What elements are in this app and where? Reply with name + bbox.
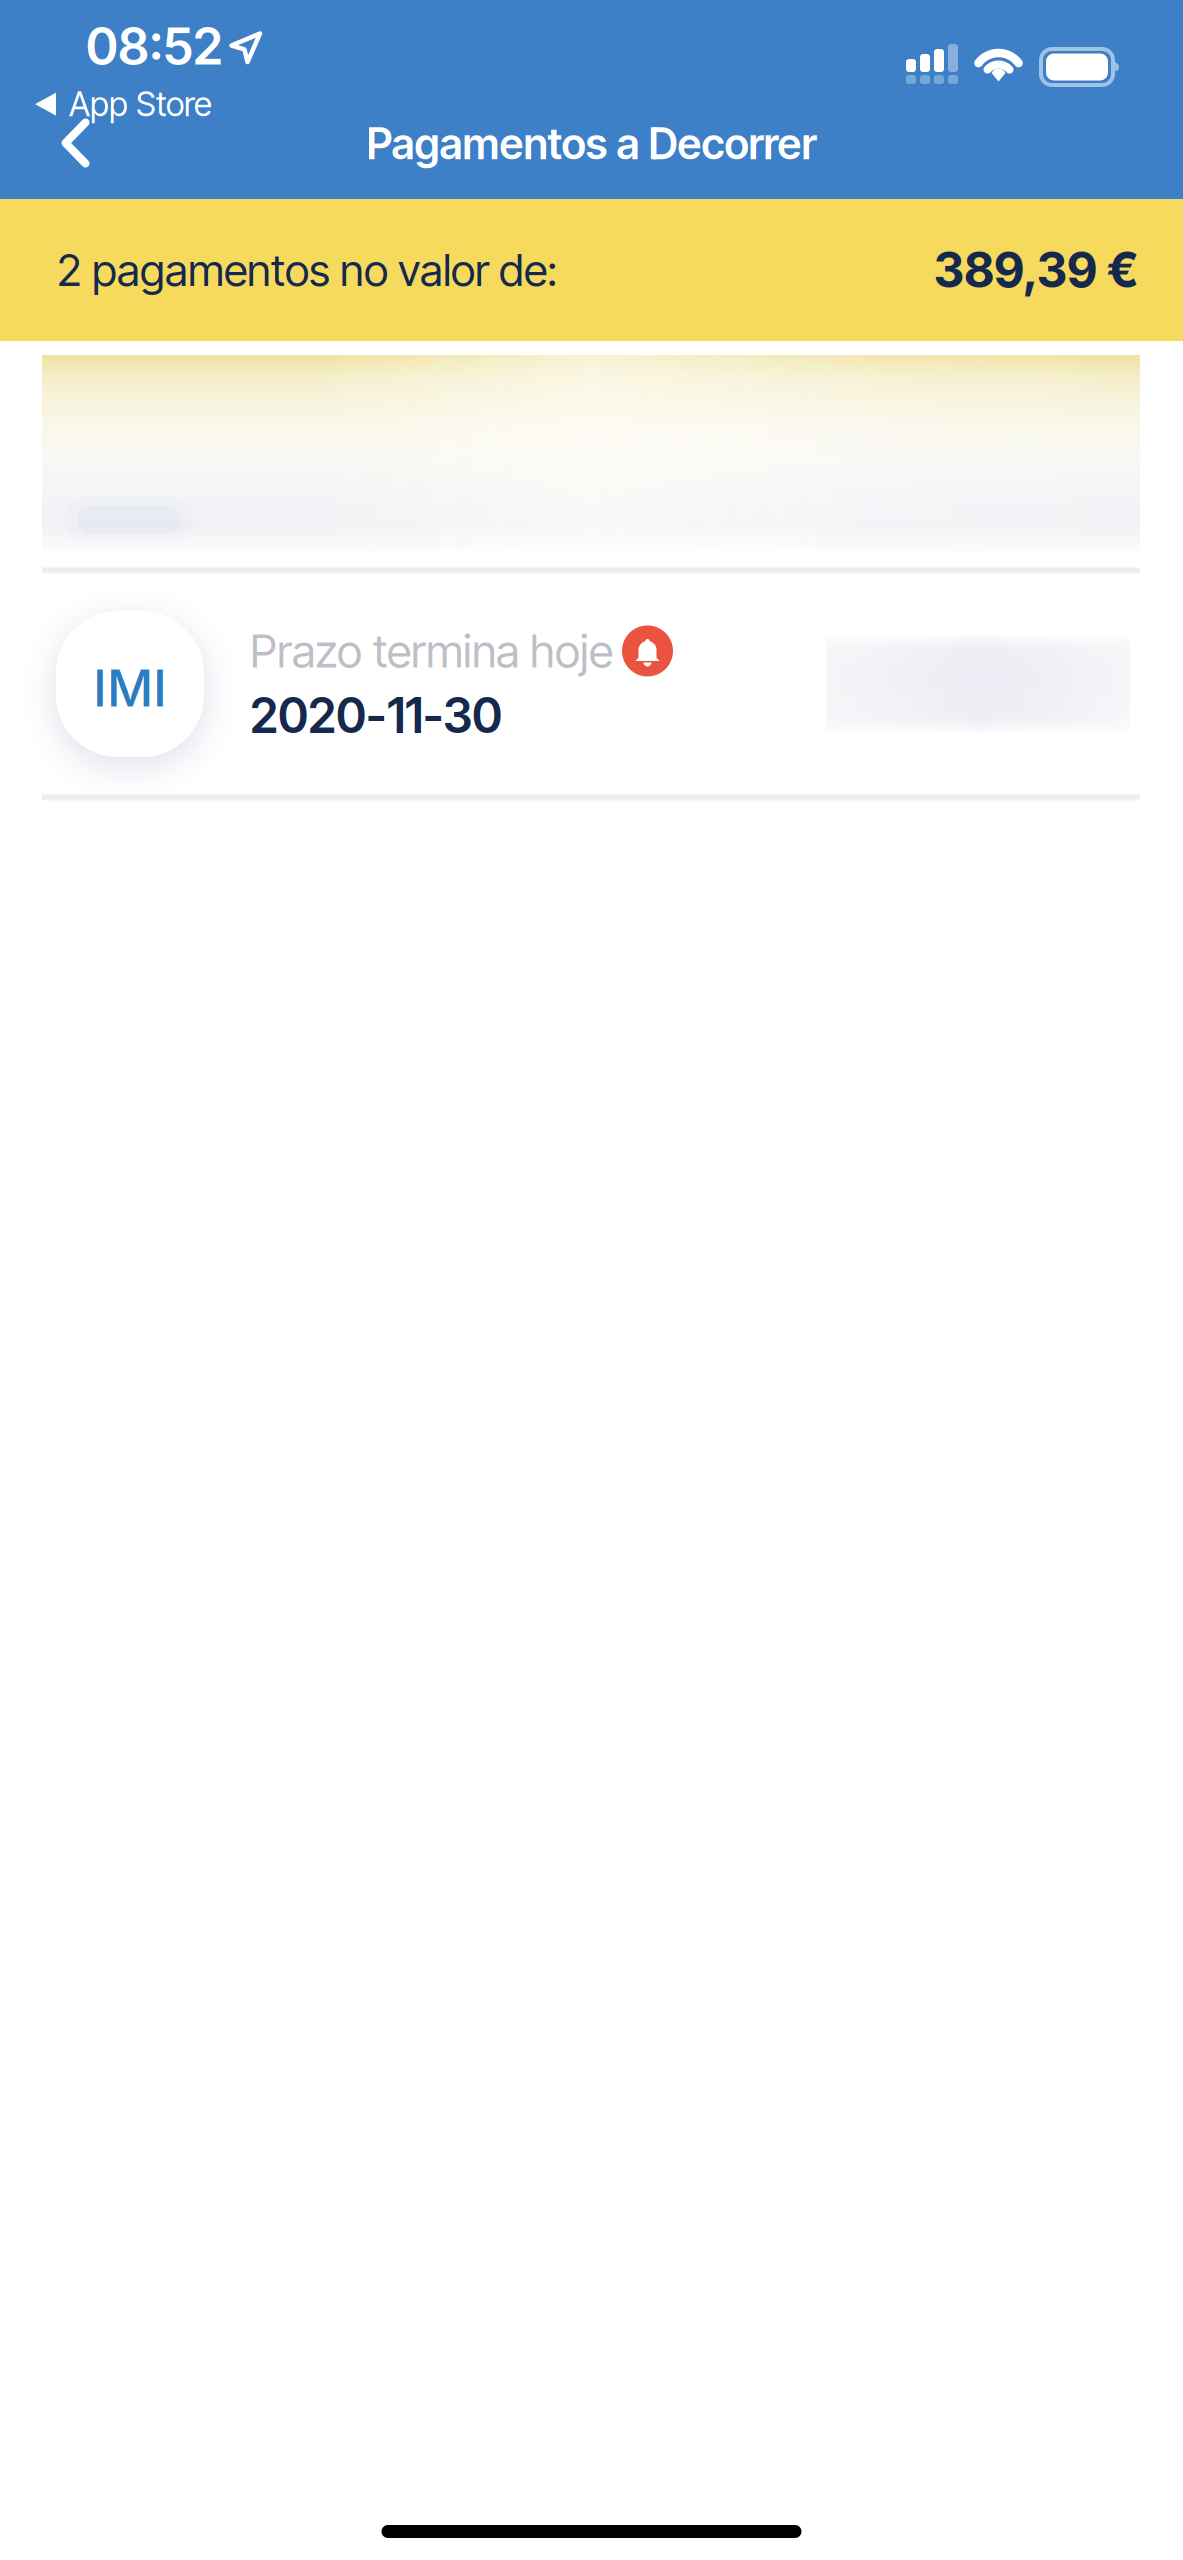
staticText: Prazo termina hoje	[250, 623, 613, 678]
staticText: Pagamentos a Decorrer	[366, 118, 816, 170]
button[interactable]: Pagamento	[0, 341, 1183, 567]
staticText: 2020-11-30	[250, 686, 502, 744]
button[interactable]: IMI	[0, 574, 1183, 794]
staticText: 08:52	[86, 15, 223, 77]
staticText: App Store	[69, 84, 212, 124]
staticText: IMI	[93, 657, 167, 719]
staticText: 389,39 €	[934, 241, 1138, 299]
button[interactable]: Back to App Store	[30, 84, 250, 189]
staticText: 2 pagamentos no valor de:	[57, 243, 557, 297]
